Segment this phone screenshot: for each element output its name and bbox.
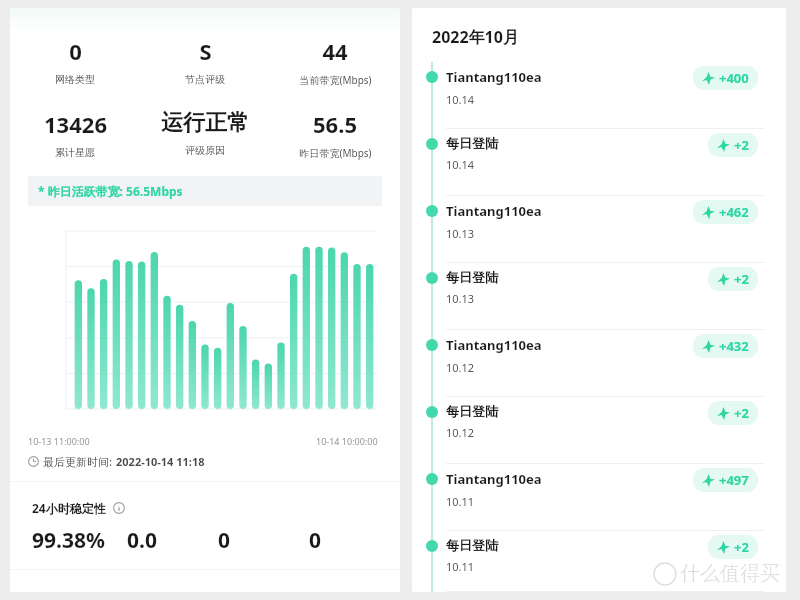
button[interactable]: Tiantang110ea [412, 330, 786, 397]
staticText: 10.14 [446, 157, 475, 172]
staticText: 0 [309, 526, 382, 555]
staticText: 10.12 [446, 425, 475, 440]
staticText: 0 [218, 526, 309, 555]
staticText: 2022-10-14 11:18 [116, 454, 205, 469]
staticText: 每日登陆 [446, 537, 498, 553]
button[interactable]: Tiantang110ea [412, 62, 786, 129]
staticText: 10.12 [446, 360, 475, 375]
staticText: 网络类型 [55, 73, 95, 86]
staticText: 10.13 [446, 291, 475, 306]
staticText: 最后更新时间: [43, 454, 112, 469]
staticText: 每日登陆 [446, 403, 498, 419]
staticText: Tiantang110ea [446, 336, 542, 354]
staticText: 每日登陆 [446, 135, 498, 151]
staticText: +400 [719, 69, 749, 87]
staticText: Tiantang110ea [446, 470, 542, 488]
other: Clock [28, 456, 39, 467]
button[interactable]: 每日登陆 [412, 397, 786, 464]
staticText: 昨日带宽(Mbps) [299, 146, 372, 160]
staticText: +462 [719, 203, 749, 221]
staticText: 24小时稳定性 [32, 500, 106, 516]
staticText: 44 [322, 36, 348, 66]
staticText: +2 [734, 136, 749, 154]
staticText: 10.11 [446, 494, 475, 509]
staticText: +2 [734, 404, 749, 422]
button[interactable]: 0 [10, 36, 140, 86]
button[interactable]: 每日登陆 [412, 263, 786, 330]
staticText: +2 [734, 538, 749, 556]
staticText: 10-13 11:00:00 [28, 435, 90, 447]
staticText: Tiantang110ea [446, 202, 542, 220]
staticText: 99.38% [32, 526, 127, 555]
staticText: * 昨日活跃带宽: 56.5Mbps [38, 183, 183, 199]
staticText: S [199, 36, 212, 66]
button[interactable]: 13426 [10, 109, 140, 159]
staticText: 10.13 [446, 226, 475, 241]
button[interactable]: 每日登陆 [412, 129, 786, 196]
staticText: 2022年10月 [432, 26, 519, 48]
staticText: Tiantang110ea [446, 68, 542, 86]
staticText: 当前带宽(Mbps) [299, 73, 372, 87]
staticText: 10.14 [446, 92, 475, 107]
button[interactable]: 44 [270, 36, 400, 87]
button[interactable]: Tiantang110ea [412, 196, 786, 263]
other: Info [113, 502, 125, 514]
staticText: +2 [734, 270, 749, 288]
staticText: 运行正常 [161, 109, 249, 137]
staticText: 评级原因 [185, 144, 225, 157]
staticText: 13426 [44, 109, 107, 139]
button[interactable]: S [140, 36, 270, 86]
staticText: +432 [719, 337, 749, 355]
staticText: 10.11 [446, 559, 475, 574]
staticText: 0 [69, 36, 82, 66]
button[interactable]: 每日登陆 [412, 531, 786, 592]
button[interactable]: Tiantang110ea [412, 464, 786, 531]
staticText: 节点评级 [185, 73, 225, 86]
button[interactable]: * 昨日活跃带宽: 56.5Mbps [28, 176, 382, 206]
staticText: 56.5 [313, 109, 357, 139]
staticText: 0.0 [127, 526, 218, 555]
staticText: 每日登陆 [446, 269, 498, 285]
button[interactable]: 56.5 [270, 109, 400, 160]
button[interactable]: 运行正常 [140, 109, 270, 157]
staticText: +497 [719, 471, 749, 489]
staticText: 什么值得买 [680, 561, 780, 586]
staticText: 累计星愿 [55, 146, 95, 159]
staticText: 10-14 10:00:00 [316, 435, 378, 447]
